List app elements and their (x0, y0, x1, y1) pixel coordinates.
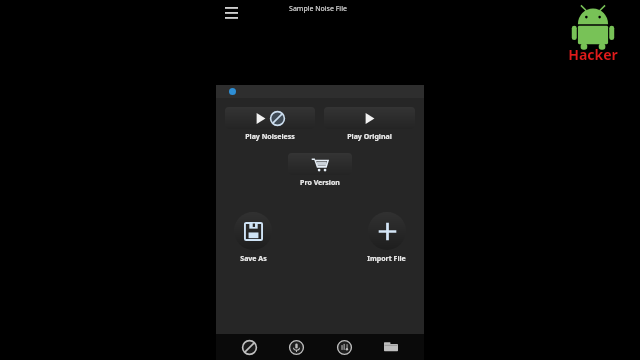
button[interactable]: Files (376, 334, 406, 360)
button[interactable]: Menu (218, 0, 244, 26)
button[interactable]: Play Noiseless (225, 107, 315, 142)
button[interactable]: Pro Version (288, 153, 352, 188)
staticText: Hacker (568, 45, 618, 64)
staticText: Pro Version (300, 178, 340, 188)
staticText: Import File (367, 254, 406, 264)
staticText: Save As (240, 254, 267, 264)
button[interactable]: Save As (234, 212, 272, 264)
staticText: Sample Noise File (289, 4, 347, 14)
staticText: Play Original (347, 132, 392, 142)
button[interactable]: Import File (367, 212, 406, 264)
button[interactable]: Record (281, 334, 311, 360)
button[interactable]: Play Original (324, 107, 415, 142)
staticText: Play Noiseless (245, 132, 295, 142)
button[interactable]: Audio (329, 334, 359, 360)
button[interactable]: Noise reduction (234, 334, 264, 360)
